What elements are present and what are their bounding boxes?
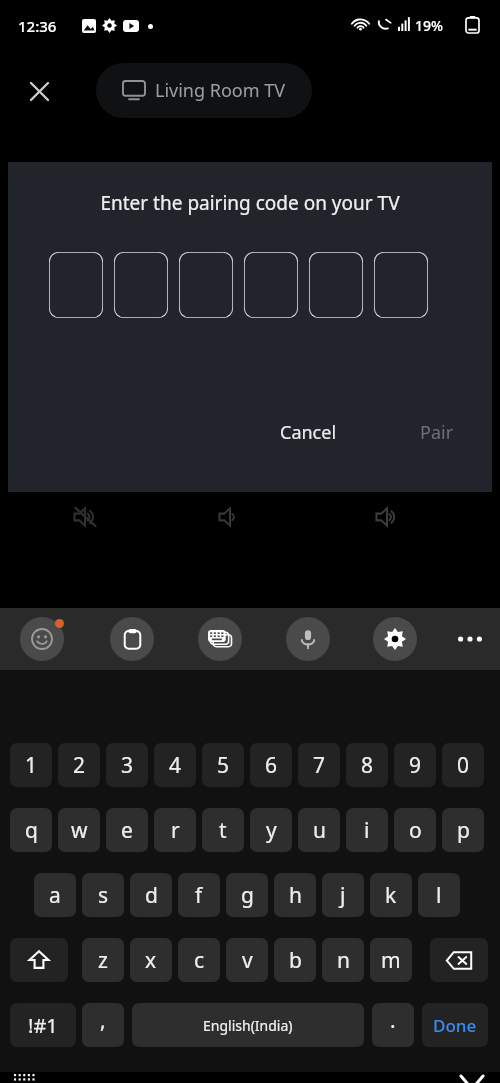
button[interactable]: d [130, 873, 172, 917]
button[interactable]: k [370, 873, 412, 917]
button[interactable]: 5 [202, 743, 244, 787]
button[interactable]: q [10, 808, 52, 852]
button[interactable] [244, 252, 298, 318]
button[interactable]: More options [448, 617, 492, 661]
button[interactable]: g [226, 873, 268, 917]
button[interactable]: , [82, 1003, 124, 1047]
button[interactable]: Keyboard layout [4, 1060, 48, 1083]
staticText: m [381, 946, 401, 975]
button[interactable]: 7 [298, 743, 340, 787]
staticText: l [436, 881, 442, 910]
staticText: 5 [217, 751, 230, 780]
button[interactable]: !#1 [10, 1003, 76, 1047]
button[interactable]: Living Room TV [96, 63, 312, 118]
button[interactable]: Close [20, 72, 58, 110]
button[interactable]: 1 [10, 743, 52, 787]
button[interactable]: Pair [406, 410, 468, 455]
staticText: n [337, 946, 350, 975]
staticText: t [219, 816, 227, 845]
button[interactable]: Emoji [20, 617, 64, 661]
button[interactable]: Shift [10, 938, 68, 982]
button[interactable]: e [106, 808, 148, 852]
staticText: . [390, 1006, 396, 1035]
button[interactable]: u [298, 808, 340, 852]
button[interactable]: English(India) [132, 1003, 364, 1047]
button[interactable]: Backspace [430, 938, 488, 982]
button[interactable]: v [226, 938, 268, 982]
button[interactable]: 0 [442, 743, 484, 787]
button[interactable] [179, 252, 233, 318]
staticText: English(India) [203, 1016, 293, 1035]
button[interactable]: o [394, 808, 436, 852]
staticText: z [98, 946, 108, 975]
button[interactable]: 6 [250, 743, 292, 787]
staticText: f [195, 881, 203, 910]
staticText: r [171, 816, 180, 845]
button[interactable]: j [322, 873, 364, 917]
staticText: h [289, 881, 302, 910]
button[interactable]: Volume down [209, 497, 251, 537]
staticText: s [98, 881, 109, 910]
staticText: g [241, 881, 254, 910]
staticText: i [364, 816, 370, 845]
staticText: 6 [265, 751, 278, 780]
button[interactable]: a [34, 873, 76, 917]
button[interactable]: r [154, 808, 196, 852]
button[interactable]: p [442, 808, 484, 852]
button[interactable]: Switch keyboard [198, 617, 242, 661]
staticText: c [194, 946, 205, 975]
button[interactable] [374, 252, 428, 318]
staticText: Enter the pairing code on your TV [8, 190, 492, 216]
staticText: j [340, 881, 346, 910]
button[interactable]: y [250, 808, 292, 852]
button[interactable]: 9 [394, 743, 436, 787]
button[interactable]: t [202, 808, 244, 852]
staticText: 1 [25, 751, 38, 780]
button[interactable]: . [372, 1003, 414, 1047]
button[interactable]: Voice input [286, 617, 330, 661]
staticText: e [121, 816, 133, 845]
staticText: 12:36 [18, 16, 57, 36]
button[interactable]: 4 [154, 743, 196, 787]
staticText: w [71, 816, 88, 845]
staticText: 9 [409, 751, 422, 780]
staticText: Pair [420, 420, 454, 445]
button[interactable]: 3 [106, 743, 148, 787]
button[interactable] [309, 252, 363, 318]
button[interactable]: 8 [346, 743, 388, 787]
staticText: a [49, 881, 61, 910]
staticText: u [313, 816, 326, 845]
button[interactable]: Cancel [266, 410, 351, 455]
button[interactable]: f [178, 873, 220, 917]
button[interactable]: h [274, 873, 316, 917]
staticText: 2 [73, 751, 86, 780]
button[interactable]: l [418, 873, 460, 917]
button[interactable]: Settings [373, 617, 417, 661]
button[interactable]: z [82, 938, 124, 982]
button[interactable]: 2 [58, 743, 100, 787]
staticText: v [242, 946, 253, 975]
button[interactable]: Mute [64, 497, 106, 537]
button[interactable]: b [274, 938, 316, 982]
button[interactable]: x [130, 938, 172, 982]
button[interactable]: Hide keyboard [450, 1060, 494, 1083]
button[interactable]: n [322, 938, 364, 982]
staticText: 8 [361, 751, 374, 780]
button[interactable] [49, 252, 103, 318]
staticText: d [145, 881, 158, 910]
staticText: 19% [415, 16, 443, 35]
staticText: k [385, 881, 397, 910]
staticText: , [100, 1006, 106, 1035]
button[interactable]: s [82, 873, 124, 917]
staticText: 3 [121, 751, 134, 780]
staticText: b [289, 946, 302, 975]
staticText: 0 [457, 751, 470, 780]
button[interactable]: Volume up [366, 497, 408, 537]
button[interactable]: Done [422, 1003, 488, 1047]
button[interactable]: i [346, 808, 388, 852]
button[interactable]: m [370, 938, 412, 982]
button[interactable]: w [58, 808, 100, 852]
button[interactable]: Clipboard [110, 617, 154, 661]
button[interactable] [114, 252, 168, 318]
button[interactable]: c [178, 938, 220, 982]
